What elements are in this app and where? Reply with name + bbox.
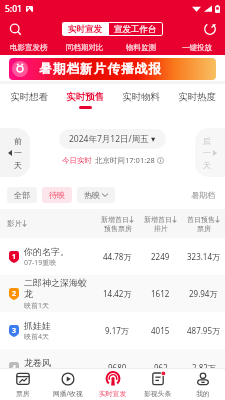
staticText: 962: [154, 362, 168, 373]
staticText: 暑期档新片传播战报: [39, 61, 163, 77]
button[interactable]: 影视头条: [135, 369, 180, 400]
staticText: 2024年7月12日/周五 ▾: [69, 133, 156, 145]
staticText: 北京时间17:01:28: [95, 155, 155, 165]
button[interactable]: 暑期档: [188, 187, 218, 203]
button[interactable]: 实时宣发: [90, 369, 135, 400]
staticText: 2.82万: [192, 362, 216, 373]
button[interactable]: 我的: [180, 369, 225, 400]
button[interactable]: 3: [0, 312, 225, 349]
button[interactable]: 实时物料: [113, 87, 169, 113]
button[interactable]: Share: [200, 19, 220, 39]
staticText: 实时物料: [122, 91, 160, 103]
staticText: 二郎神之深海蛟龙: [24, 277, 95, 300]
staticText: 2: [12, 289, 17, 299]
button[interactable]: 2: [0, 275, 225, 312]
staticText: 龙卷风: [24, 357, 51, 368]
staticText: 9.17万: [105, 325, 129, 336]
staticText: 预售票房: [104, 224, 132, 233]
button[interactable]: 全部: [7, 187, 37, 203]
staticText: 新增首日: [144, 215, 172, 224]
button[interactable]: 暑期档新片传播战报: [9, 58, 216, 80]
staticText: 4015: [151, 325, 170, 336]
button[interactable]: 4: [0, 349, 225, 386]
staticText: 一键投放: [182, 43, 212, 52]
staticText: 我的: [196, 389, 210, 398]
button[interactable]: 宣发工作台: [108, 22, 163, 36]
staticText: 映前1天: [24, 301, 50, 311]
button[interactable]: 票房: [0, 369, 45, 400]
staticText: 暑期档: [191, 190, 215, 200]
staticText: 票房: [197, 224, 211, 233]
staticText: 3: [12, 326, 17, 336]
staticText: 前 一 天: [14, 136, 22, 170]
staticText: 14.42万: [103, 288, 132, 299]
staticText: 487.95万: [187, 325, 221, 336]
button[interactable]: 实时想看: [0, 87, 57, 113]
staticText: 1612: [151, 288, 170, 299]
staticText: 实时热度: [178, 91, 216, 103]
button[interactable]: 实时热度: [169, 87, 225, 113]
staticText: 今日实时: [62, 156, 92, 165]
staticText: 实时宣发: [99, 389, 127, 398]
staticText: 你的名字。: [24, 246, 69, 257]
staticText: 待映: [49, 190, 65, 200]
staticText: 抓娃娃: [24, 320, 51, 331]
button[interactable]: Search: [5, 19, 25, 39]
staticText: 物料监测: [126, 43, 156, 52]
button[interactable]: 实时宣发: [62, 22, 108, 36]
button[interactable]: 2024年7月12日/周五 ▾: [59, 129, 166, 149]
staticText: 后 一 天: [203, 136, 211, 170]
button[interactable]: 待映: [42, 187, 72, 203]
staticText: 同档期对比: [66, 43, 104, 52]
staticText: 网播/收视: [53, 389, 83, 398]
staticText: 映前4天: [24, 332, 50, 342]
staticText: 排片: [154, 224, 168, 233]
button[interactable]: 前 一 天: [0, 128, 30, 177]
button[interactable]: 电影宣发榜: [0, 40, 57, 55]
staticText: 323.14万: [187, 251, 221, 262]
staticText: 宣发工作台: [114, 24, 157, 35]
button[interactable]: 一键投放: [169, 40, 225, 55]
staticText: 4: [12, 363, 17, 373]
staticText: 9680: [108, 362, 127, 373]
staticText: 5:01: [5, 3, 22, 15]
staticText: 电影宣发榜: [10, 43, 48, 52]
staticText: 全部: [14, 190, 30, 200]
staticText: 热映: [84, 190, 100, 200]
button[interactable]: 实时预售: [57, 87, 113, 113]
staticText: 1: [12, 252, 17, 262]
button[interactable]: 1: [0, 238, 225, 275]
button[interactable]: 物料监测: [113, 40, 169, 55]
staticText: 2249: [151, 251, 170, 262]
staticText: 票房: [16, 389, 30, 398]
staticText: 实时预售: [66, 91, 104, 103]
staticText: 29.94万: [189, 288, 218, 299]
staticText: 映前4天: [24, 369, 50, 379]
button[interactable]: 后 一 天: [195, 128, 225, 177]
staticText: 07-19重映: [24, 258, 57, 268]
staticText: 实时宣发: [68, 24, 102, 35]
button[interactable]: 网播/收视: [45, 369, 90, 400]
button[interactable]: 热映: [77, 187, 115, 203]
staticText: 影片: [7, 219, 22, 228]
staticText: 实时想看: [10, 91, 48, 103]
staticText: 44.78万: [103, 251, 132, 262]
button[interactable]: 同档期对比: [57, 40, 113, 55]
staticText: 影视头条: [144, 389, 172, 398]
staticText: 新增首日: [101, 215, 129, 224]
staticText: 首日预售: [187, 215, 215, 224]
